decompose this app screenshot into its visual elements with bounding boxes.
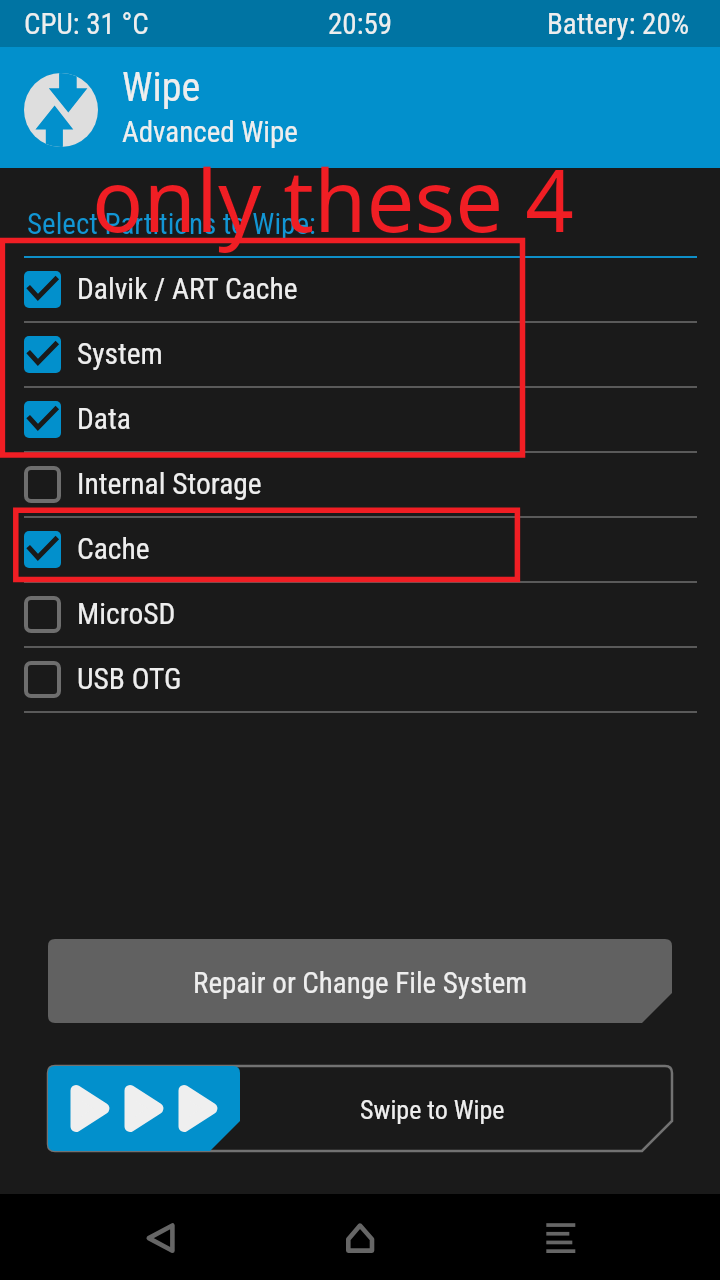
staticText: Advanced Wipe [122, 115, 298, 149]
staticText: Wipe [122, 64, 201, 111]
button[interactable]: Cache [0, 517, 720, 582]
button[interactable]: Wipe [0, 47, 720, 168]
staticText: System [77, 337, 163, 372]
staticText: 20:59 [328, 7, 393, 41]
button[interactable]: Dalvik / ART Cache [0, 257, 720, 322]
staticText: Swipe to Wipe [360, 1095, 505, 1125]
staticText: Repair or Change File System [193, 966, 528, 1000]
button[interactable]: Menu [500, 1194, 620, 1280]
staticText: Battery: 20% [547, 7, 690, 41]
button[interactable]: Home [300, 1194, 420, 1280]
staticText: Cache [77, 532, 150, 567]
staticText: Dalvik / ART Cache [77, 272, 298, 307]
button[interactable]: Data [0, 387, 720, 452]
button[interactable]: Internal Storage [0, 452, 720, 517]
staticText: MicroSD [77, 597, 176, 632]
staticText: USB OTG [77, 662, 182, 697]
staticText: Select Partitions to Wipe: [27, 207, 316, 241]
button[interactable]: MicroSD [0, 582, 720, 647]
button[interactable]: Swipe to Wipe [48, 1066, 672, 1151]
staticText: Internal Storage [77, 467, 262, 502]
staticText: only these 4 [92, 141, 574, 257]
button[interactable]: Repair or Change File System [48, 939, 672, 1023]
staticText: CPU: 31 °C [24, 7, 149, 41]
staticText: Data [77, 402, 131, 437]
button[interactable]: System [0, 322, 720, 387]
button[interactable]: Back [100, 1194, 220, 1280]
button[interactable]: USB OTG [0, 647, 720, 712]
